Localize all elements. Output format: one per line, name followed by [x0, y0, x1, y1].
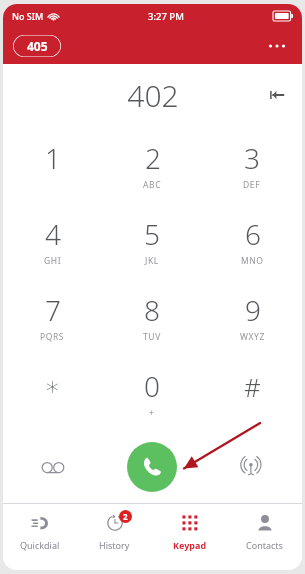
staticText: 405 [27, 38, 48, 54]
staticText: 9 [245, 291, 261, 329]
staticText: PQRS [40, 331, 65, 343]
button[interactable]: 1 [3, 126, 102, 203]
staticText: History [99, 539, 130, 551]
staticText: DEF [243, 179, 261, 191]
staticText: 2 [123, 511, 128, 522]
staticText: 7 [45, 291, 61, 329]
button[interactable]: ∗ [3, 355, 102, 431]
button[interactable]: More options [262, 31, 292, 61]
staticText: 402 [127, 75, 179, 116]
staticText: ∗ [44, 371, 61, 401]
button[interactable]: Voicemail [3, 431, 102, 503]
staticText: GHI [44, 255, 62, 267]
button[interactable]: # [202, 355, 302, 431]
button[interactable]: 4 [3, 203, 102, 279]
button[interactable]: 2 [102, 126, 202, 203]
staticText: JKL [145, 255, 159, 267]
button[interactable]: 9 [202, 279, 302, 355]
staticText: 6 [245, 215, 261, 253]
staticText: 8 [144, 291, 160, 329]
staticText: 1 [45, 139, 61, 177]
button[interactable]: 2 [77, 504, 152, 556]
staticText: TUV [143, 331, 161, 343]
button[interactable]: 405 [13, 35, 61, 57]
staticText: No SIM [12, 10, 44, 22]
staticText: ABC [143, 179, 162, 191]
staticText: 4 [45, 215, 61, 253]
staticText: 2 [145, 139, 161, 177]
button[interactable]: Contacts [227, 504, 302, 556]
staticText: MNO [241, 255, 264, 267]
button[interactable]: 0 [102, 355, 202, 431]
button[interactable]: Backspace [260, 78, 294, 112]
staticText: 3 [244, 139, 260, 177]
staticText: 3:27 PM [148, 10, 184, 23]
staticText: 5 [144, 215, 160, 253]
button[interactable]: 5 [102, 203, 202, 279]
staticText: + [149, 407, 155, 419]
button[interactable]: 7 [3, 279, 102, 355]
staticText: # [244, 369, 261, 404]
staticText: Keypad [173, 539, 207, 551]
button[interactable]: 3 [202, 126, 302, 203]
staticText: Quickdial [20, 539, 60, 551]
staticText: Contacts [246, 539, 283, 551]
button[interactable]: GSM network [202, 431, 302, 503]
button[interactable]: 6 [202, 203, 302, 279]
staticText: 0 [144, 367, 160, 405]
button[interactable]: Quickdial [3, 504, 77, 556]
button[interactable]: Keypad [152, 504, 227, 556]
button[interactable]: Call [127, 442, 177, 492]
staticText: WXYZ [240, 331, 265, 343]
button[interactable]: 8 [102, 279, 202, 355]
